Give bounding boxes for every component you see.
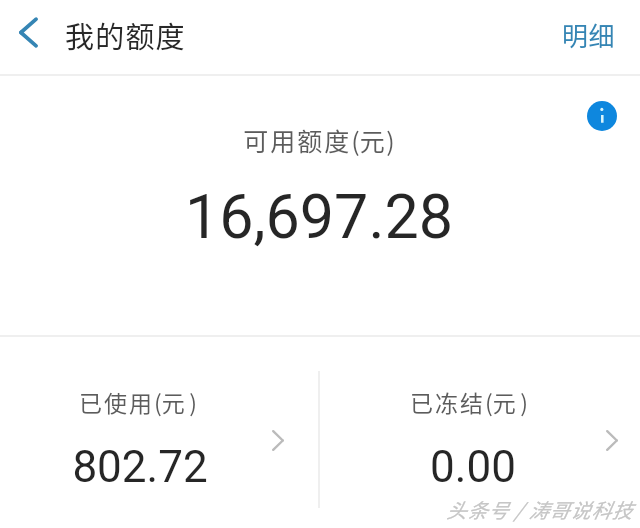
button[interactable]: Back <box>5 7 51 57</box>
staticText: 我的额度 <box>65 14 186 56</box>
button[interactable]: 已使用(元) <box>0 337 319 528</box>
staticText: 可用额度(元) <box>39 122 599 158</box>
staticText: 头条号 / 涛哥说科技 <box>446 495 633 524</box>
button[interactable]: Info <box>583 97 620 134</box>
staticText: 明细 <box>562 16 616 54</box>
staticText: 16,697.28 <box>39 181 599 252</box>
button[interactable]: 明细 <box>549 9 629 61</box>
button[interactable]: 已冻结(元) <box>321 337 640 528</box>
staticText: 已冻结(元) <box>319 385 619 418</box>
staticText: 802.72 <box>0 441 290 493</box>
staticText: 已使用(元) <box>0 385 288 418</box>
staticText: 0.00 <box>323 441 623 493</box>
